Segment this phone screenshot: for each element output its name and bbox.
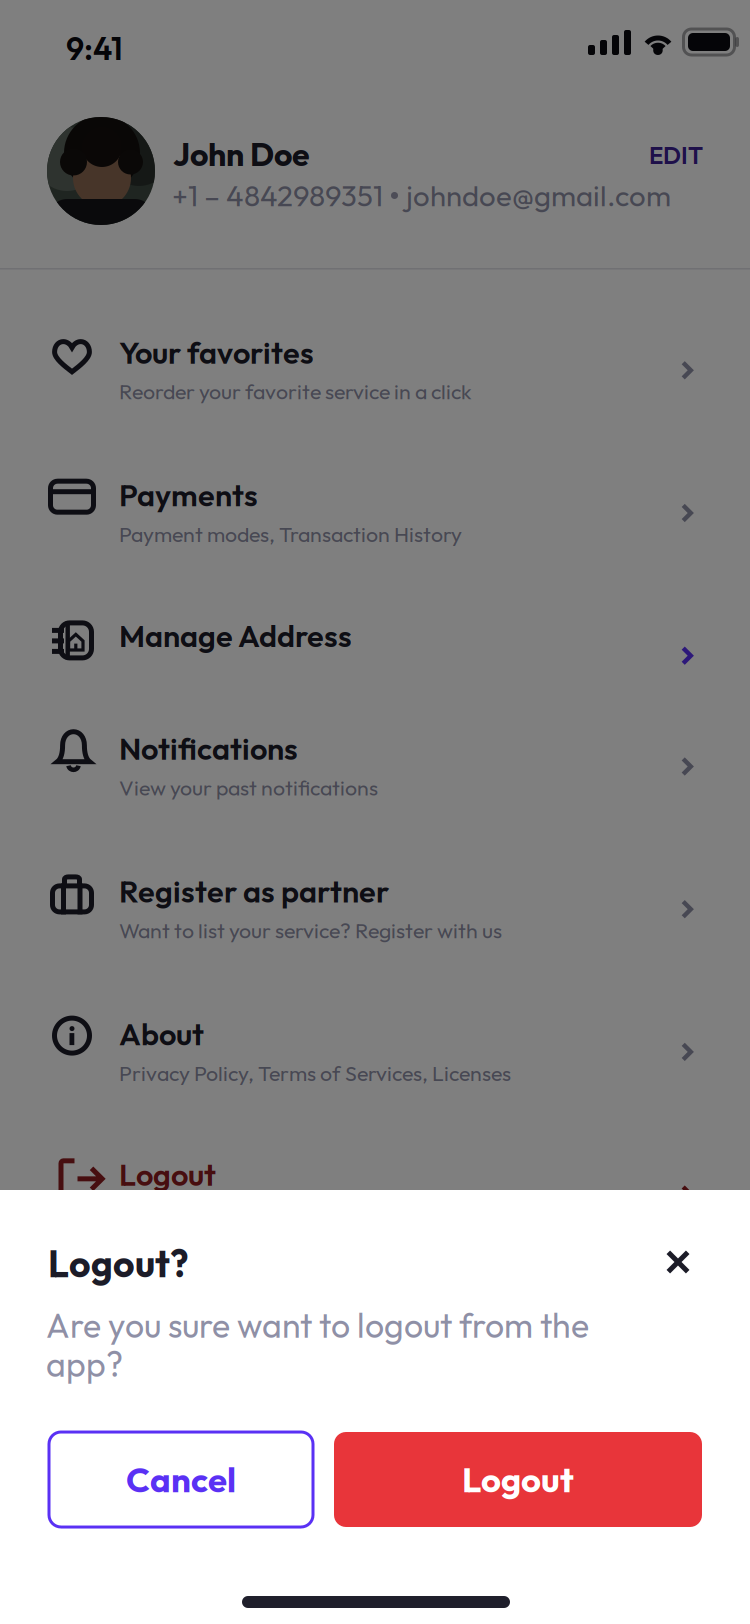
staticText: Reorder your favorite service in a click <box>119 378 472 405</box>
staticText: About <box>119 1015 204 1053</box>
staticText: Logout <box>119 1155 216 1194</box>
staticText: Privacy Policy, Terms of Services, Licen… <box>119 1060 511 1086</box>
button[interactable]: Cancel <box>49 1432 313 1527</box>
staticText: Cancel <box>126 1458 236 1501</box>
staticText: John Doe <box>173 134 310 174</box>
button[interactable]: Notifications <box>0 701 750 844</box>
staticText: View your past notifications <box>119 774 378 801</box>
button[interactable]: Manage Address <box>0 590 750 701</box>
button[interactable]: Close <box>646 1230 710 1294</box>
staticText: +1 – 4842989351 <box>172 177 383 214</box>
staticText: Payment modes, Transaction History <box>119 521 462 548</box>
staticText: Register as partner <box>119 872 389 910</box>
staticText: Logout? <box>48 1240 189 1287</box>
staticText: johndoe@gmail.com <box>406 177 671 214</box>
button[interactable]: Payments <box>0 448 750 590</box>
button[interactable]: Register as partner <box>0 844 750 987</box>
staticText: app? <box>46 1343 123 1386</box>
button[interactable]: Your favorites <box>0 305 750 448</box>
staticText: Notifications <box>119 729 298 768</box>
button[interactable]: About <box>0 987 750 1129</box>
button[interactable]: EDIT <box>633 128 719 182</box>
button[interactable]: Logout <box>0 1129 750 1240</box>
staticText: Logout <box>462 1458 574 1501</box>
staticText: Are you sure want to logout from the <box>46 1304 589 1347</box>
staticText: Your favorites <box>119 333 314 372</box>
staticText: Want to list your service? Register with… <box>119 917 502 944</box>
staticText: Manage Address <box>119 616 352 655</box>
staticText: EDIT <box>649 140 703 170</box>
staticText: Payments <box>119 476 258 514</box>
staticText: 9:41 <box>66 28 123 68</box>
button[interactable]: Logout <box>334 1432 702 1527</box>
